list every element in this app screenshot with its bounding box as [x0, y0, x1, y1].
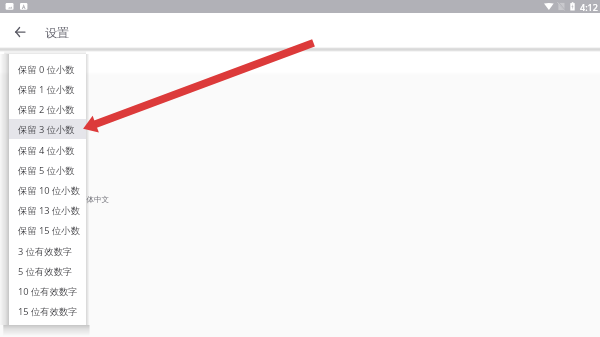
button[interactable]: 保留 3 位小数	[9, 119, 86, 139]
staticText: 保留 5 位小数	[18, 164, 75, 177]
button[interactable]: 保留 13 位小数	[9, 200, 86, 220]
staticText: 4:12	[580, 1, 598, 13]
button[interactable]: 保留 5 位小数	[9, 160, 86, 180]
staticText: 保留 3 位小数	[18, 123, 75, 136]
staticText: 3 位有效数字	[18, 245, 73, 258]
staticText: 保留 2 位小数	[18, 103, 75, 116]
staticText: 保留 15 位小数	[18, 224, 80, 237]
staticText: 设置	[45, 25, 69, 40]
button[interactable]: 10 位有效数字	[9, 281, 86, 301]
staticText: 保留 4 位小数	[18, 144, 75, 157]
staticText: 保留 10 位小数	[18, 184, 80, 197]
staticText: 保留 13 位小数	[18, 204, 80, 217]
button[interactable]: 15 位有效数字	[9, 301, 86, 321]
staticText: 5 位有效数字	[18, 265, 73, 278]
button[interactable]: 简体中文	[0, 186, 600, 210]
button[interactable]: 保留 15 位小数	[9, 220, 86, 240]
button[interactable]: 保留 2 位小数	[9, 99, 86, 119]
staticText: 简体中文	[79, 195, 109, 204]
button[interactable]: 保留 1 位小数	[9, 79, 86, 99]
button[interactable]: Back	[2, 14, 38, 50]
button[interactable]: 保留 4 位小数	[9, 140, 86, 160]
staticText: 保留 0 位小数	[18, 63, 75, 76]
button[interactable]: 3 位有效数字	[9, 241, 86, 261]
staticText: 保留 1 位小数	[18, 83, 75, 96]
button[interactable]: 5 位有效数字	[9, 261, 86, 281]
staticText: 15 位有效数字	[18, 305, 78, 318]
button[interactable]: 保留 0 位小数	[9, 59, 86, 79]
button[interactable]: 保留 10 位小数	[9, 180, 86, 200]
staticText: 10 位有效数字	[18, 285, 78, 298]
button[interactable]	[0, 50, 600, 72]
